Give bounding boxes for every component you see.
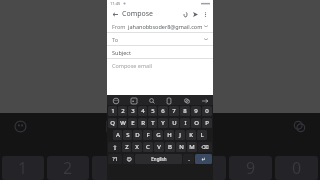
button[interactable]: A — [113, 130, 122, 140]
button[interactable]: Subject — [112, 46, 208, 58]
staticText: G — [156, 131, 161, 139]
button[interactable]: V — [154, 142, 164, 152]
button[interactable]: Emoji — [111, 96, 120, 105]
button[interactable]: ⇧ — [108, 142, 121, 152]
button[interactable]: Stickers — [182, 96, 191, 105]
staticText: C — [146, 143, 150, 151]
button[interactable]: From — [112, 20, 208, 32]
staticText: Z — [125, 143, 129, 151]
button[interactable]: D — [133, 130, 142, 140]
button[interactable]: 9 — [191, 106, 201, 116]
button[interactable]: S — [123, 130, 132, 140]
button[interactable]: N — [176, 142, 186, 152]
staticText: R — [141, 119, 145, 127]
button[interactable]: O — [191, 118, 201, 128]
button[interactable]: F — [143, 130, 152, 140]
staticText: Y — [161, 119, 165, 127]
button[interactable]: 8 — [180, 106, 190, 116]
button[interactable]: 2 — [118, 106, 127, 116]
button[interactable]: 5 — [148, 106, 157, 116]
staticText: 11:45 — [110, 1, 121, 6]
staticText: F — [146, 131, 150, 139]
staticText: M — [189, 143, 195, 151]
staticText: P — [205, 119, 209, 127]
staticText: Compose — [122, 9, 154, 19]
button[interactable]: M — [187, 142, 197, 152]
button[interactable]: ☺ — [123, 154, 134, 164]
staticText: 8 — [183, 107, 187, 115]
button[interactable]: . — [183, 154, 194, 164]
button[interactable]: H — [164, 130, 174, 140]
button[interactable]: 0 — [202, 106, 212, 116]
staticText: E — [131, 119, 135, 127]
staticText: 9 — [246, 157, 256, 179]
button[interactable]: U — [169, 118, 179, 128]
button[interactable]: ⌫ — [198, 142, 212, 152]
staticText: 0 — [205, 107, 209, 115]
button[interactable]: Clipboard — [164, 96, 173, 105]
staticText: 5 — [151, 107, 155, 115]
staticText: 3 — [131, 107, 135, 115]
staticText: B — [168, 143, 172, 151]
button[interactable]: E — [128, 118, 137, 128]
button[interactable]: L — [197, 130, 207, 140]
button[interactable]: Q — [108, 118, 117, 128]
button[interactable]: 7 — [169, 106, 179, 116]
button[interactable]: X — [132, 142, 142, 152]
button[interactable]: Back — [110, 9, 120, 19]
button[interactable]: Y — [158, 118, 168, 128]
staticText: English — [151, 156, 167, 162]
button[interactable]: 1 — [108, 106, 117, 116]
staticText: 4 — [141, 107, 145, 115]
button[interactable]: 4 — [138, 106, 147, 116]
button[interactable]: English — [135, 154, 182, 164]
staticText: A — [116, 131, 120, 139]
staticText: X — [135, 143, 139, 151]
staticText: 2 — [63, 157, 73, 179]
staticText: Compose email — [112, 62, 152, 69]
button[interactable]: ↵ — [195, 154, 212, 164]
button[interactable]: More options — [200, 9, 210, 19]
button[interactable]: 6 — [158, 106, 168, 116]
staticText: W — [120, 119, 126, 127]
button[interactable]: 3 — [128, 106, 137, 116]
staticText: 4 — [154, 157, 164, 179]
button[interactable]: P — [202, 118, 212, 128]
button[interactable]: ?1 — [108, 154, 122, 164]
button[interactable]: C — [143, 142, 153, 152]
button[interactable]: Z — [122, 142, 131, 152]
button[interactable]: To — [112, 33, 208, 45]
button[interactable]: W — [118, 118, 127, 128]
staticText: ⇧ — [112, 144, 118, 151]
staticText: . — [188, 155, 190, 163]
button[interactable]: B — [165, 142, 175, 152]
button[interactable]: Send — [190, 9, 200, 19]
staticText: K — [189, 131, 193, 139]
staticText: jahanobbsoder8@gmail.com — [128, 23, 203, 30]
staticText: ↵ — [201, 156, 206, 162]
staticText: U — [172, 119, 177, 127]
staticText: 1 — [18, 157, 28, 179]
button[interactable]: GIF — [129, 96, 138, 105]
button[interactable]: G — [153, 130, 163, 140]
button[interactable]: Attach file — [180, 9, 190, 19]
staticText: 6 — [161, 107, 165, 115]
staticText: 3 — [108, 157, 118, 179]
staticText: T — [151, 119, 155, 127]
button[interactable]: Search — [147, 96, 156, 105]
button[interactable]: More — [200, 96, 209, 105]
staticText: H — [167, 131, 172, 139]
button[interactable]: J — [175, 130, 185, 140]
staticText: S — [126, 131, 130, 139]
button[interactable]: T — [148, 118, 157, 128]
button[interactable]: I — [180, 118, 190, 128]
button[interactable]: K — [186, 130, 196, 140]
staticText: L — [200, 131, 204, 139]
button[interactable]: R — [138, 118, 147, 128]
staticText: 7 — [172, 107, 176, 115]
staticText: O — [194, 119, 199, 127]
staticText: D — [135, 131, 140, 139]
staticText: N — [179, 143, 184, 151]
staticText: 8 — [200, 157, 210, 179]
staticText: J — [179, 131, 181, 139]
